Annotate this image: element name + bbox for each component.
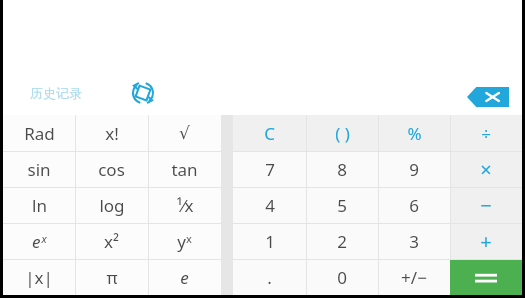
button[interactable]: 3 <box>378 224 450 259</box>
staticText: 4 <box>265 194 275 217</box>
button[interactable]: % <box>378 115 450 151</box>
staticText: Rad <box>24 122 55 145</box>
staticText: 2 <box>337 230 347 253</box>
staticText: × <box>480 156 492 183</box>
staticText: +/− <box>401 266 427 289</box>
button[interactable]: √ <box>148 115 221 151</box>
staticText: % <box>407 122 422 145</box>
staticText: ln <box>32 194 47 217</box>
button[interactable]: |x| <box>3 260 75 295</box>
staticText: + <box>480 228 492 255</box>
staticText: 3 <box>409 230 419 253</box>
staticText: 5 <box>337 194 347 217</box>
button[interactable]: cos <box>75 152 148 187</box>
button[interactable]: − <box>450 188 522 223</box>
button[interactable]: . <box>233 260 306 295</box>
staticText: cos <box>98 158 125 181</box>
button[interactable]: sin <box>3 152 75 187</box>
staticText: yˣ <box>177 230 192 253</box>
staticText: π <box>106 266 118 289</box>
staticText: 0 <box>337 266 347 289</box>
staticText: 9 <box>409 158 419 181</box>
button[interactable]: Rad <box>3 115 75 151</box>
button[interactable]: x! <box>75 115 148 151</box>
button[interactable]: x² <box>75 224 148 259</box>
staticText: 8 <box>337 158 347 181</box>
staticText: |x| <box>25 266 53 289</box>
button[interactable]: C <box>233 115 306 151</box>
button[interactable]: + <box>450 224 522 259</box>
staticText: x! <box>105 122 119 145</box>
staticText: 7 <box>265 158 275 181</box>
button[interactable]: 6 <box>378 188 450 223</box>
button[interactable]: 9 <box>378 152 450 187</box>
staticText: eˣ <box>32 230 46 253</box>
button[interactable]: ÷ <box>450 115 522 151</box>
button[interactable]: 5 <box>306 188 378 223</box>
button[interactable]: × <box>450 152 522 187</box>
staticText: tan <box>171 158 198 181</box>
button[interactable]: π <box>75 260 148 295</box>
button[interactable]: Backspace <box>467 87 509 107</box>
staticText: . <box>267 266 272 289</box>
button[interactable]: tan <box>148 152 221 187</box>
button[interactable]: 1 <box>233 224 306 259</box>
staticText: ÷ <box>481 122 491 145</box>
button[interactable]: 2 <box>306 224 378 259</box>
button[interactable]: +/− <box>378 260 450 295</box>
button[interactable]: 历史记录 <box>30 85 82 101</box>
button[interactable]: 0 <box>306 260 378 295</box>
staticText: log <box>99 194 125 217</box>
button[interactable]: 8 <box>306 152 378 187</box>
staticText: 历史记录 <box>30 85 82 101</box>
staticText: 1 <box>265 230 275 253</box>
button[interactable]: ln <box>3 188 75 223</box>
staticText: − <box>480 192 492 219</box>
button[interactable]: log <box>75 188 148 223</box>
staticText: C <box>264 122 275 145</box>
button[interactable]: ¹⁄x <box>148 188 221 223</box>
button[interactable]: Equals <box>450 260 522 295</box>
staticText: ¹⁄x <box>176 194 194 217</box>
staticText: sin <box>27 158 51 181</box>
staticText: x² <box>104 230 119 253</box>
staticText: 6 <box>409 194 419 217</box>
button[interactable]: ( ) <box>306 115 378 151</box>
button[interactable]: eˣ <box>3 224 75 259</box>
button[interactable]: 7 <box>233 152 306 187</box>
button[interactable]: Rotate screen <box>131 81 155 105</box>
button[interactable]: yˣ <box>148 224 221 259</box>
button[interactable]: e <box>148 260 221 295</box>
staticText: ( ) <box>335 122 350 145</box>
staticText: √ <box>179 123 190 143</box>
button[interactable]: 4 <box>233 188 306 223</box>
staticText: e <box>180 266 189 289</box>
